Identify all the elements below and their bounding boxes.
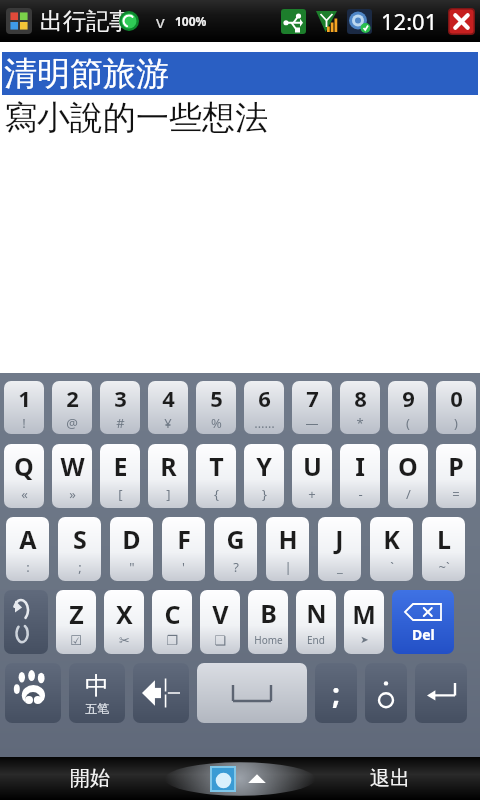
button[interactable]: 3 [100,381,140,434]
staticText: R [160,449,177,483]
staticText: G [226,522,245,556]
button[interactable]: Volume [345,7,373,35]
staticText: / [406,485,411,503]
button[interactable]: R [148,444,188,508]
staticText: I [355,449,365,483]
button[interactable]: Start [4,6,34,36]
button[interactable]: F [162,517,205,581]
button[interactable]: 8 [340,381,380,434]
staticText: 4 [162,383,175,413]
button[interactable]: E [100,444,140,508]
button[interactable]: P [436,444,476,508]
staticText: T [209,449,224,483]
button[interactable]: Semicolon [315,663,357,723]
staticText: B [260,596,277,630]
button[interactable]: 4 [148,381,188,434]
staticText: : [26,558,30,576]
staticText: " [129,558,135,576]
staticText: E [113,449,128,483]
button[interactable]: H [266,517,309,581]
button[interactable]: Arrow keys [133,663,189,723]
staticText: [ [118,485,123,503]
button[interactable]: U [292,444,332,508]
staticText: * [356,414,364,432]
button[interactable]: Expand [244,766,270,792]
staticText: A [19,522,37,556]
staticText: 清明節旅游 [4,53,169,95]
button[interactable]: Signal [312,7,340,35]
button[interactable]: Y [244,444,284,508]
button[interactable]: Enter [415,663,467,723]
button[interactable]: N [296,590,336,654]
staticText: - [358,485,363,503]
button[interactable]: Space [197,663,307,723]
button[interactable]: I [340,444,380,508]
button[interactable]: 9 [388,381,428,434]
button[interactable]: L [422,517,465,581]
button[interactable]: 清明節旅游 [2,52,478,95]
staticText: v [156,10,165,33]
button[interactable]: 退出 [300,757,480,800]
button[interactable]: W [52,444,92,508]
staticText: 退出 [370,766,410,791]
staticText: C [164,597,181,631]
button[interactable]: V [200,590,240,654]
button[interactable]: 5 [196,381,236,434]
staticText: ) [454,414,458,432]
button[interactable]: 0 [436,381,476,434]
button[interactable]: Q [4,444,44,508]
staticText: 6 [258,383,271,413]
staticText: 五笔 [85,701,109,716]
staticText: _ [337,558,343,576]
staticText: 寫小說的一些想法 [4,97,268,139]
button[interactable]: Baidu IME [5,663,61,723]
staticText: ❐ [166,633,178,648]
staticText: ? [233,558,239,576]
button[interactable]: Close [446,6,476,36]
staticText: 0 [450,383,463,413]
staticText: 2 [66,383,79,413]
button[interactable]: S [58,517,101,581]
button[interactable]: Input mode [69,663,125,723]
button[interactable]: T [196,444,236,508]
staticText: ; [78,558,82,576]
button[interactable]: Period [365,663,407,723]
staticText: ☑ [70,633,82,648]
button[interactable]: 寫小說的一些想法 [0,95,480,141]
button[interactable]: 7 [292,381,332,434]
button[interactable]: K [370,517,413,581]
button[interactable]: 2 [52,381,92,434]
staticText: 5 [210,383,223,413]
button[interactable]: Delete [392,590,454,654]
button[interactable]: G [214,517,257,581]
staticText: 中 [85,671,109,701]
button[interactable]: D [110,517,153,581]
staticText: Q [14,449,34,483]
button[interactable]: 6 [244,381,284,434]
button[interactable]: Undo [4,590,48,654]
staticText: — [305,414,319,432]
button[interactable]: O [388,444,428,508]
staticText: M [352,597,376,631]
button[interactable]: X [104,590,144,654]
button[interactable]: M [344,590,384,654]
staticText: # [116,414,125,432]
button[interactable]: Input method [210,766,236,792]
button[interactable]: C [152,590,192,654]
staticText: Del [412,625,435,644]
button[interactable]: 1 [4,381,44,434]
staticText: 出行記事 [40,7,132,36]
staticText: « [21,485,28,503]
staticText: End [307,633,325,647]
staticText: V [212,597,229,631]
button[interactable]: USB [279,7,307,35]
button[interactable]: A [6,517,49,581]
button[interactable]: Z [56,590,96,654]
button[interactable]: 開始 [0,757,180,800]
staticText: ' [182,558,185,576]
button[interactable]: J [318,517,361,581]
staticText: P [448,449,464,483]
staticText: Y [256,449,272,483]
staticText: ~` [438,558,450,576]
button[interactable]: B [248,590,288,654]
